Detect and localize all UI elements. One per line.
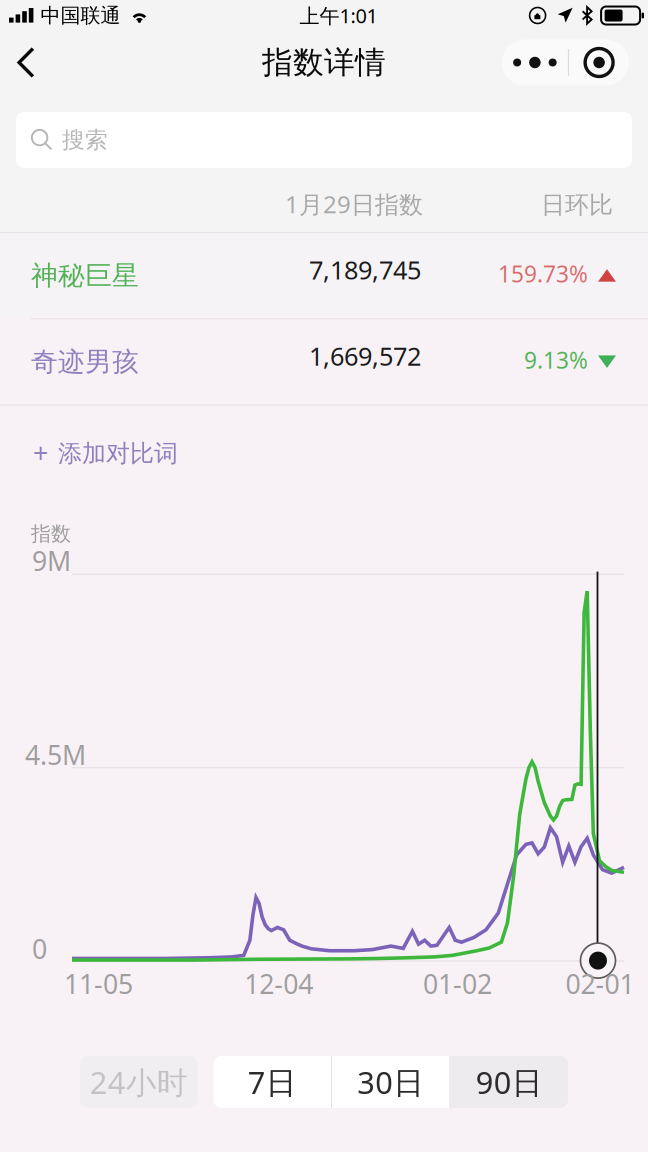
staticText: 9.13% [524, 345, 588, 375]
staticText: 7日 [248, 1062, 297, 1102]
staticText: 01-02 [423, 966, 492, 1001]
staticText: 神秘巨星 [31, 259, 139, 292]
button[interactable]: More [502, 39, 568, 85]
staticText: 1月29日指数 [285, 188, 423, 220]
staticText: 11-05 [64, 966, 133, 1001]
staticText: 9M [32, 543, 71, 578]
button[interactable]: 7日 [213, 1056, 331, 1108]
staticText: 02-01 [565, 966, 634, 1001]
staticText: 4.5M [25, 737, 86, 772]
staticText: 上午1:01 [299, 2, 377, 29]
staticText: 12-04 [244, 966, 313, 1001]
staticText: 指数 [31, 522, 71, 546]
staticText: 24小时 [90, 1062, 188, 1102]
staticText: 中国联通 [40, 3, 120, 28]
staticText: 奇迹男孩 [31, 345, 139, 378]
button[interactable]: 神秘巨星 [0, 233, 648, 318]
staticText: 7,189,745 [309, 253, 421, 286]
button[interactable]: Close [569, 39, 629, 85]
staticText: 指数详情 [262, 44, 386, 81]
button[interactable]: 24小时 [80, 1056, 197, 1108]
staticText: 159.73% [498, 259, 588, 289]
button[interactable]: 90日 [450, 1056, 568, 1108]
button[interactable]: + [0, 406, 648, 510]
staticText: 日环比 [541, 190, 613, 220]
staticText: 0 [32, 931, 47, 966]
button[interactable]: Back [0, 35, 54, 90]
staticText: 添加对比词 [58, 439, 178, 468]
button[interactable]: 奇迹男孩 [0, 319, 648, 404]
staticText: 30日 [357, 1062, 424, 1102]
staticText: 1,669,572 [309, 339, 421, 373]
staticText: 搜索 [62, 126, 108, 154]
staticText: + [33, 435, 48, 470]
button[interactable]: 30日 [332, 1056, 449, 1108]
staticText: 90日 [476, 1062, 543, 1102]
button[interactable]: 搜索 [16, 112, 632, 168]
